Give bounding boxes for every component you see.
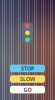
button[interactable]: GO [10,86,45,93]
button[interactable]: SLOW [10,75,45,83]
button[interactable]: STOP [10,65,45,72]
staticText: STOP [21,65,34,72]
staticText: GO [23,86,31,93]
staticText: SLOW [20,75,35,83]
